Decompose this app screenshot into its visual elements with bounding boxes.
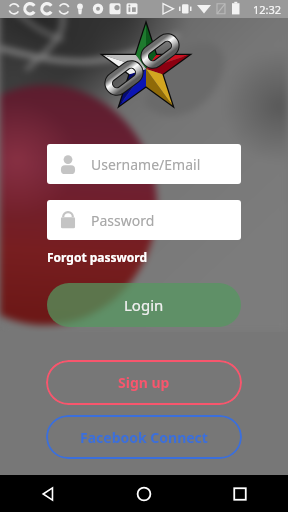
button[interactable]: Password (47, 200, 241, 240)
staticText: 12:32 (253, 2, 282, 17)
button[interactable]: Username/Email (47, 144, 241, 184)
button[interactable]: Back (0, 475, 96, 512)
button[interactable]: Sign up (46, 360, 242, 405)
button[interactable]: Home (96, 475, 192, 512)
staticText: Sign up (118, 373, 170, 392)
button[interactable]: Facebook Connect (46, 415, 242, 459)
button[interactable]: Forgot password (47, 249, 148, 265)
button[interactable]: Login (47, 283, 241, 327)
staticText: Forgot password (47, 249, 148, 265)
staticText: Password (91, 211, 155, 230)
button[interactable]: Recents (192, 475, 288, 512)
staticText: Facebook Connect (80, 428, 208, 447)
staticText: Username/Email (91, 155, 201, 174)
staticText: Login (124, 295, 164, 315)
